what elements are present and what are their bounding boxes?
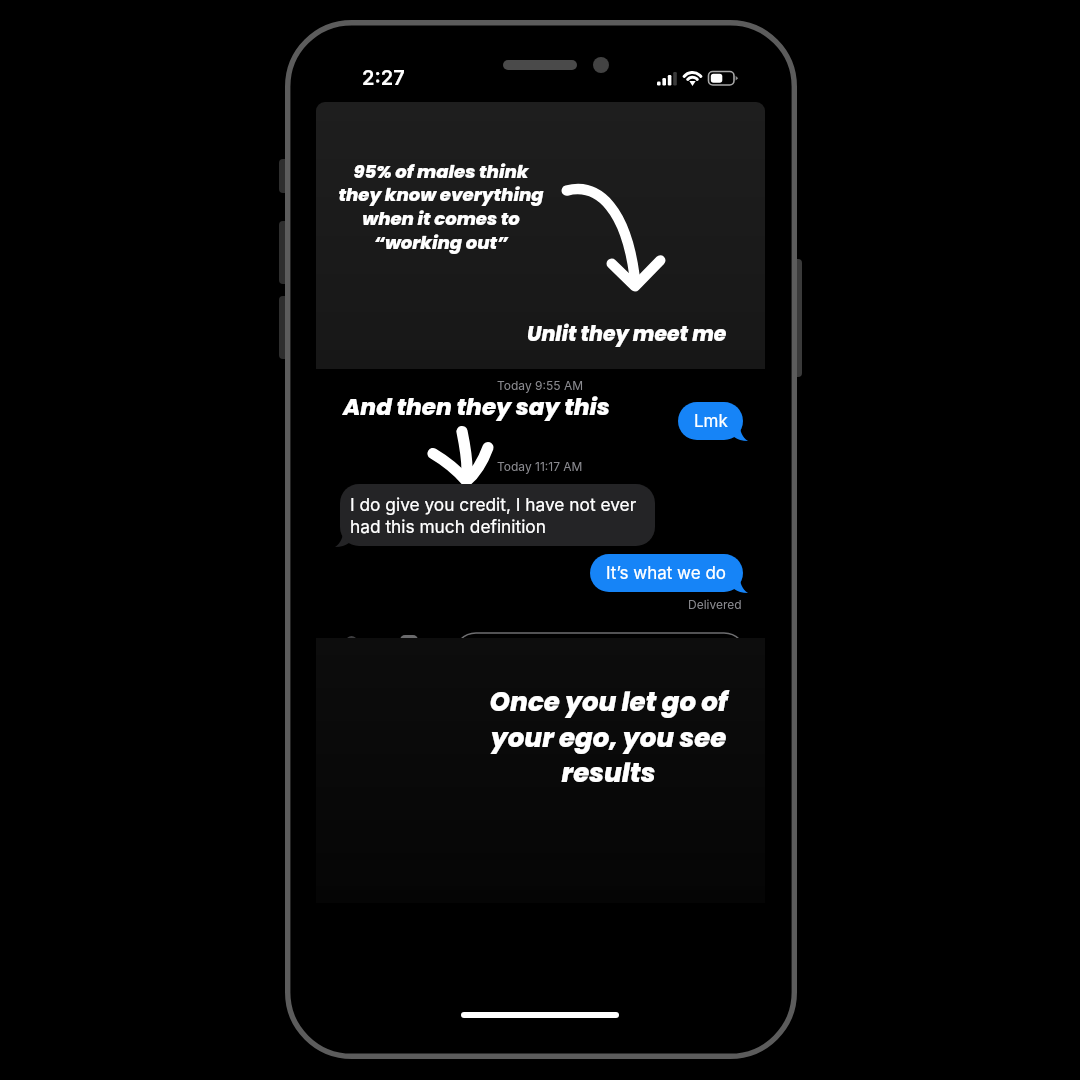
- staticText: I do give you credit, I have not ever ha…: [350, 494, 647, 537]
- staticText: 95% of males think they know everything …: [316, 159, 568, 256]
- button[interactable]: I do give you credit, I have not ever ha…: [340, 484, 655, 546]
- staticText: It’s what we do: [606, 563, 727, 584]
- staticText: Unlit they meet me: [527, 320, 727, 348]
- staticText: Today 11:17 AM: [497, 459, 583, 474]
- staticText: Lmk: [694, 411, 728, 432]
- staticText: Once you let go of your ego, you see res…: [476, 684, 741, 791]
- staticText: 2:27: [362, 66, 405, 90]
- button[interactable]: Apps: [394, 631, 424, 661]
- button[interactable]: Camera: [340, 631, 364, 661]
- button[interactable]: It’s what we do: [590, 554, 743, 592]
- staticText: Delivered: [688, 597, 742, 612]
- staticText: And then they say this: [343, 391, 610, 423]
- button[interactable]: iMessage text field: [454, 633, 746, 677]
- staticText: Today 9:55 AM: [497, 378, 584, 393]
- button[interactable]: Lmk: [678, 402, 743, 440]
